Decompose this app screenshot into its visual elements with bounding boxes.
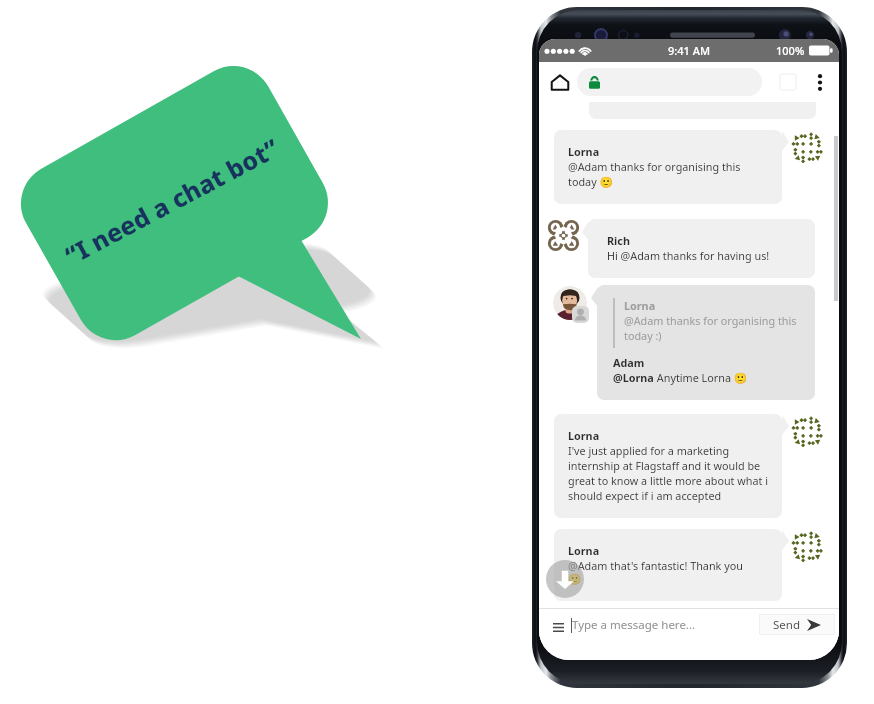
button[interactable]: Type a message here... bbox=[571, 613, 751, 637]
button[interactable]: Rich bbox=[588, 219, 815, 278]
button[interactable]: Menu bbox=[547, 616, 569, 638]
button[interactable]: More options bbox=[809, 71, 831, 93]
button[interactable]: Send bbox=[759, 614, 835, 635]
staticText: “I need a chat bot” bbox=[59, 130, 285, 272]
staticText: internship at Flagstaff and it would be bbox=[568, 458, 761, 473]
staticText: Type a message here... bbox=[572, 617, 696, 633]
button[interactable]: Scroll to bottom bbox=[546, 560, 584, 598]
staticText: Lorna bbox=[568, 428, 600, 443]
staticText: 🙂 bbox=[568, 573, 582, 586]
button[interactable] bbox=[577, 68, 762, 96]
staticText: should expect if i am accepted bbox=[568, 488, 722, 503]
staticText: today :) bbox=[624, 328, 662, 343]
button[interactable]: Lorna bbox=[597, 285, 815, 400]
staticText: Anytime Lorna 🙂 bbox=[654, 370, 748, 385]
staticText: 100% bbox=[776, 43, 805, 58]
button[interactable]: Avatar bbox=[790, 131, 823, 164]
button[interactable]: Avatar bbox=[790, 530, 823, 563]
staticText: Send bbox=[773, 617, 800, 633]
button[interactable]: Lorna bbox=[554, 414, 782, 518]
staticText: Hi @Adam thanks for having us! bbox=[607, 248, 770, 263]
button[interactable]: Home bbox=[550, 73, 569, 92]
staticText: great to know a little more about what i bbox=[568, 473, 769, 488]
button[interactable]: Adam's avatar bbox=[553, 286, 587, 320]
staticText: Lorna bbox=[624, 298, 656, 313]
staticText: @Adam thanks for organising this bbox=[568, 159, 741, 174]
staticText: @Lorna bbox=[613, 370, 654, 385]
staticText: Lorna bbox=[568, 543, 600, 558]
button[interactable]: Lorna bbox=[554, 529, 782, 601]
button[interactable]: Avatar bbox=[790, 415, 823, 448]
staticText: @Adam thanks for organising this bbox=[624, 313, 797, 328]
button[interactable]: Avatar bbox=[545, 217, 582, 254]
staticText: today 🙂 bbox=[568, 174, 613, 189]
staticText: Adam bbox=[613, 355, 645, 370]
staticText: Rich bbox=[607, 233, 630, 248]
staticText: I've just applied for a marketing bbox=[568, 443, 730, 458]
staticText: 9:41 AM bbox=[668, 43, 711, 58]
button[interactable]: Lorna bbox=[554, 130, 782, 204]
staticText: @Adam that's fantastic! Thank you bbox=[568, 558, 743, 573]
staticText: Lorna bbox=[568, 144, 600, 159]
